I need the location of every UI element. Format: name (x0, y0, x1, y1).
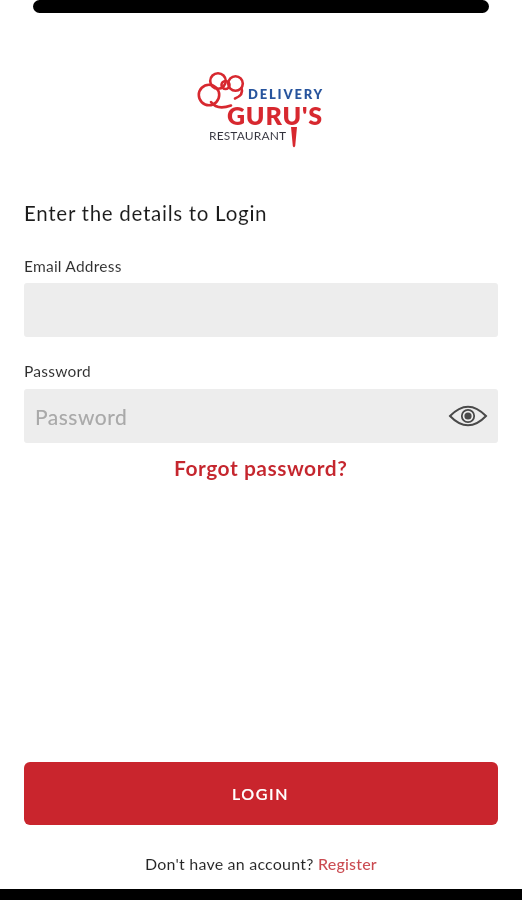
staticText: DELIVERY (248, 86, 325, 102)
staticText: RESTAURANT (209, 128, 287, 142)
button[interactable]: Forgot password? (174, 455, 348, 480)
staticText: Password (35, 404, 128, 429)
staticText: Don't have an account? (145, 854, 318, 873)
staticText: Email Address (24, 257, 122, 276)
button[interactable] (449, 405, 487, 427)
button[interactable]: LOGIN (24, 762, 498, 825)
staticText: GURU'S (227, 100, 323, 130)
staticText: LOGIN (232, 784, 290, 803)
button[interactable]: Password (24, 389, 498, 443)
button[interactable]: Register (318, 854, 377, 873)
staticText: Password (24, 362, 91, 381)
staticText: Enter the details to Login (24, 201, 268, 226)
